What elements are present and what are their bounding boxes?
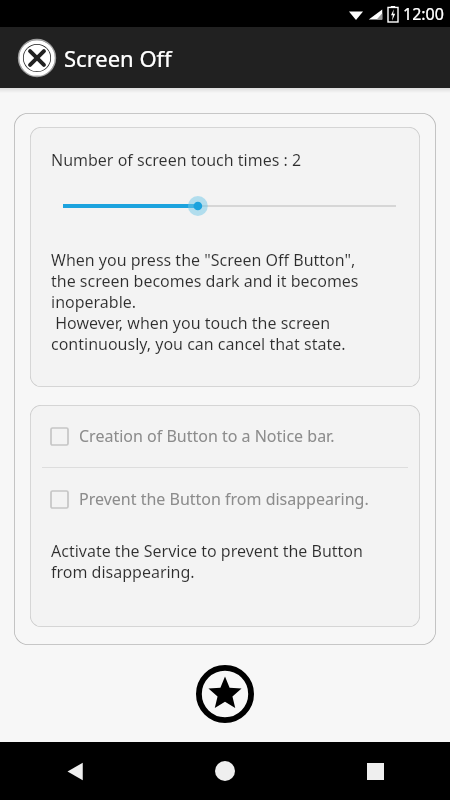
staticText: When you press the "Screen Off Button", … — [51, 249, 359, 355]
button[interactable] — [51, 189, 402, 223]
button[interactable]: Rate this app — [196, 665, 254, 723]
button[interactable]: Back — [0, 742, 150, 800]
staticText: 12:00 — [403, 3, 444, 25]
button[interactable]: Screen Off app icon — [18, 39, 56, 77]
button[interactable]: Creation of Button to a Notice bar. — [41, 421, 409, 451]
staticText: Activate the Service to prevent the Butt… — [51, 540, 363, 583]
staticText: Screen Off — [64, 43, 172, 73]
staticText: Creation of Button to a Notice bar. — [79, 425, 335, 447]
button[interactable]: Home — [150, 742, 300, 800]
button[interactable]: Recent apps — [300, 742, 450, 800]
button[interactable]: Prevent the Button from disappearing. — [41, 484, 409, 514]
staticText: Number of screen touch times : 2 — [51, 149, 302, 171]
staticText: Prevent the Button from disappearing. — [79, 488, 369, 510]
